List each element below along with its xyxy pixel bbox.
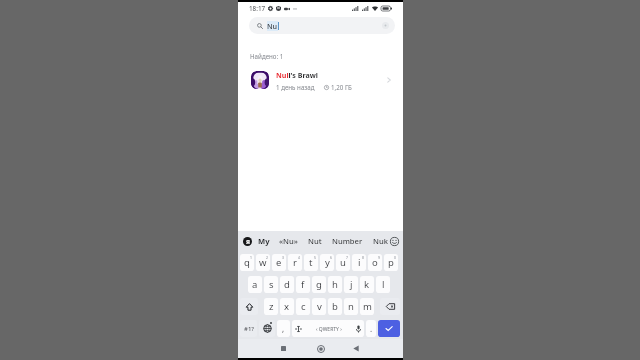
staticText: f	[301, 278, 305, 291]
button[interactable]: m	[360, 298, 374, 315]
staticText: y	[325, 256, 330, 269]
button[interactable]: Change language	[259, 320, 275, 337]
button[interactable]: Recents	[276, 341, 291, 356]
staticText: b	[332, 300, 338, 313]
staticText: #1?	[244, 325, 254, 333]
staticText: Я	[246, 238, 250, 246]
button[interactable]: a	[248, 276, 262, 293]
button[interactable]: q	[240, 254, 254, 271]
staticText: 8	[362, 255, 364, 260]
button[interactable]: l	[376, 276, 390, 293]
button[interactable]: «Nu»	[279, 236, 298, 246]
staticText: g	[316, 278, 322, 291]
button[interactable]: j	[344, 276, 358, 293]
button[interactable]: Back	[348, 341, 363, 356]
button[interactable]: y	[320, 254, 334, 271]
staticText: l	[382, 278, 385, 291]
button[interactable]: Nuki	[373, 236, 390, 246]
staticText: v	[317, 300, 322, 313]
button[interactable]: z	[264, 298, 278, 315]
button[interactable]: n	[344, 298, 358, 315]
staticText: Nu	[267, 21, 278, 31]
staticText: 5	[314, 255, 316, 260]
button[interactable]: o	[368, 254, 382, 271]
staticText: 1,20 ГБ	[331, 83, 352, 91]
button[interactable]: Backspace	[380, 298, 400, 315]
button[interactable]: Assistant	[243, 237, 252, 246]
staticText: t	[309, 256, 313, 269]
button[interactable]: t	[304, 254, 318, 271]
button[interactable]: i	[352, 254, 366, 271]
staticText: 1	[250, 255, 252, 260]
staticText: x	[284, 300, 290, 313]
button[interactable]: k	[360, 276, 374, 293]
button[interactable]: v	[312, 298, 326, 315]
button[interactable]: ‹ QWERTY ›	[292, 320, 364, 337]
staticText: q	[244, 256, 250, 269]
button[interactable]: w	[256, 254, 270, 271]
staticText: .	[370, 323, 373, 334]
staticText: h	[332, 278, 338, 291]
button[interactable]: x	[280, 298, 294, 315]
staticText: z	[269, 300, 274, 313]
button[interactable]: p	[384, 254, 398, 271]
button[interactable]: Null's Brawl	[238, 67, 403, 93]
staticText: 1 день назад	[276, 83, 315, 91]
staticText: a	[252, 278, 258, 291]
button[interactable]: u	[336, 254, 350, 271]
staticText: 18:17	[249, 4, 266, 13]
button[interactable]: Nu	[249, 17, 395, 34]
staticText: p	[388, 256, 394, 269]
staticText: 2	[266, 255, 268, 260]
button[interactable]: r	[288, 254, 302, 271]
staticText: j	[350, 278, 353, 291]
staticText: 4	[298, 255, 300, 260]
staticText: w	[259, 256, 267, 269]
button[interactable]: h	[328, 276, 342, 293]
button[interactable]: s	[264, 276, 278, 293]
staticText: e	[276, 256, 282, 269]
staticText: r	[293, 256, 297, 269]
staticText: 7	[346, 255, 348, 260]
staticText: 6	[330, 255, 332, 260]
staticText: 3	[282, 255, 284, 260]
staticText: m	[363, 300, 372, 313]
staticText: Nuki	[373, 236, 389, 246]
staticText: o	[372, 256, 378, 269]
button[interactable]: c	[296, 298, 310, 315]
staticText: u	[340, 256, 346, 269]
button[interactable]: g	[312, 276, 326, 293]
staticText: 0	[394, 255, 396, 260]
button[interactable]: My	[258, 236, 270, 246]
staticText: s	[269, 278, 274, 291]
button[interactable]: .	[366, 320, 376, 337]
button[interactable]: Enter	[378, 320, 400, 337]
staticText: Null's Brawl	[276, 70, 318, 80]
button[interactable]: Home	[313, 341, 328, 356]
staticText: 9	[378, 255, 380, 260]
button[interactable]: f	[296, 276, 310, 293]
staticText: c	[301, 300, 306, 313]
button[interactable]: Nut	[308, 236, 322, 246]
button[interactable]: Emoji	[390, 237, 399, 246]
staticText: ‹ QWERTY ›	[316, 326, 342, 333]
button[interactable]: Number	[332, 236, 363, 246]
button[interactable]: b	[328, 298, 342, 315]
staticText: n	[348, 300, 354, 313]
button[interactable]: d	[280, 276, 294, 293]
button[interactable]: e	[272, 254, 286, 271]
button[interactable]: #1?	[240, 320, 257, 337]
button[interactable]: ,	[277, 320, 290, 337]
staticText: ,	[282, 323, 285, 334]
staticText: i	[358, 256, 361, 269]
button[interactable]: Shift	[240, 298, 258, 315]
staticText: Найдено: 1	[250, 52, 284, 60]
staticText: k	[364, 278, 370, 291]
staticText: d	[284, 278, 290, 291]
